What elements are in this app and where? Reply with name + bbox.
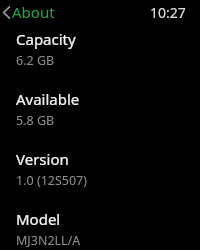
staticText: Model [16,209,61,229]
staticText: 6.2 GB [16,52,55,69]
button[interactable]: Version [0,149,200,189]
button[interactable]: Available [0,89,200,129]
staticText: 1.0 (12S507) [16,172,88,189]
staticText: 5.8 GB [16,112,55,129]
button[interactable]: Model [0,209,200,249]
staticText: 10:27 [150,3,186,22]
staticText: Available [16,89,80,109]
staticText: Version [16,149,69,169]
button[interactable]: Capacity [0,29,200,69]
staticText: Capacity [16,29,76,49]
button[interactable]: Back to About [0,0,61,24]
staticText: About [12,2,55,22]
staticText: MJ3N2LL/A [16,232,81,249]
